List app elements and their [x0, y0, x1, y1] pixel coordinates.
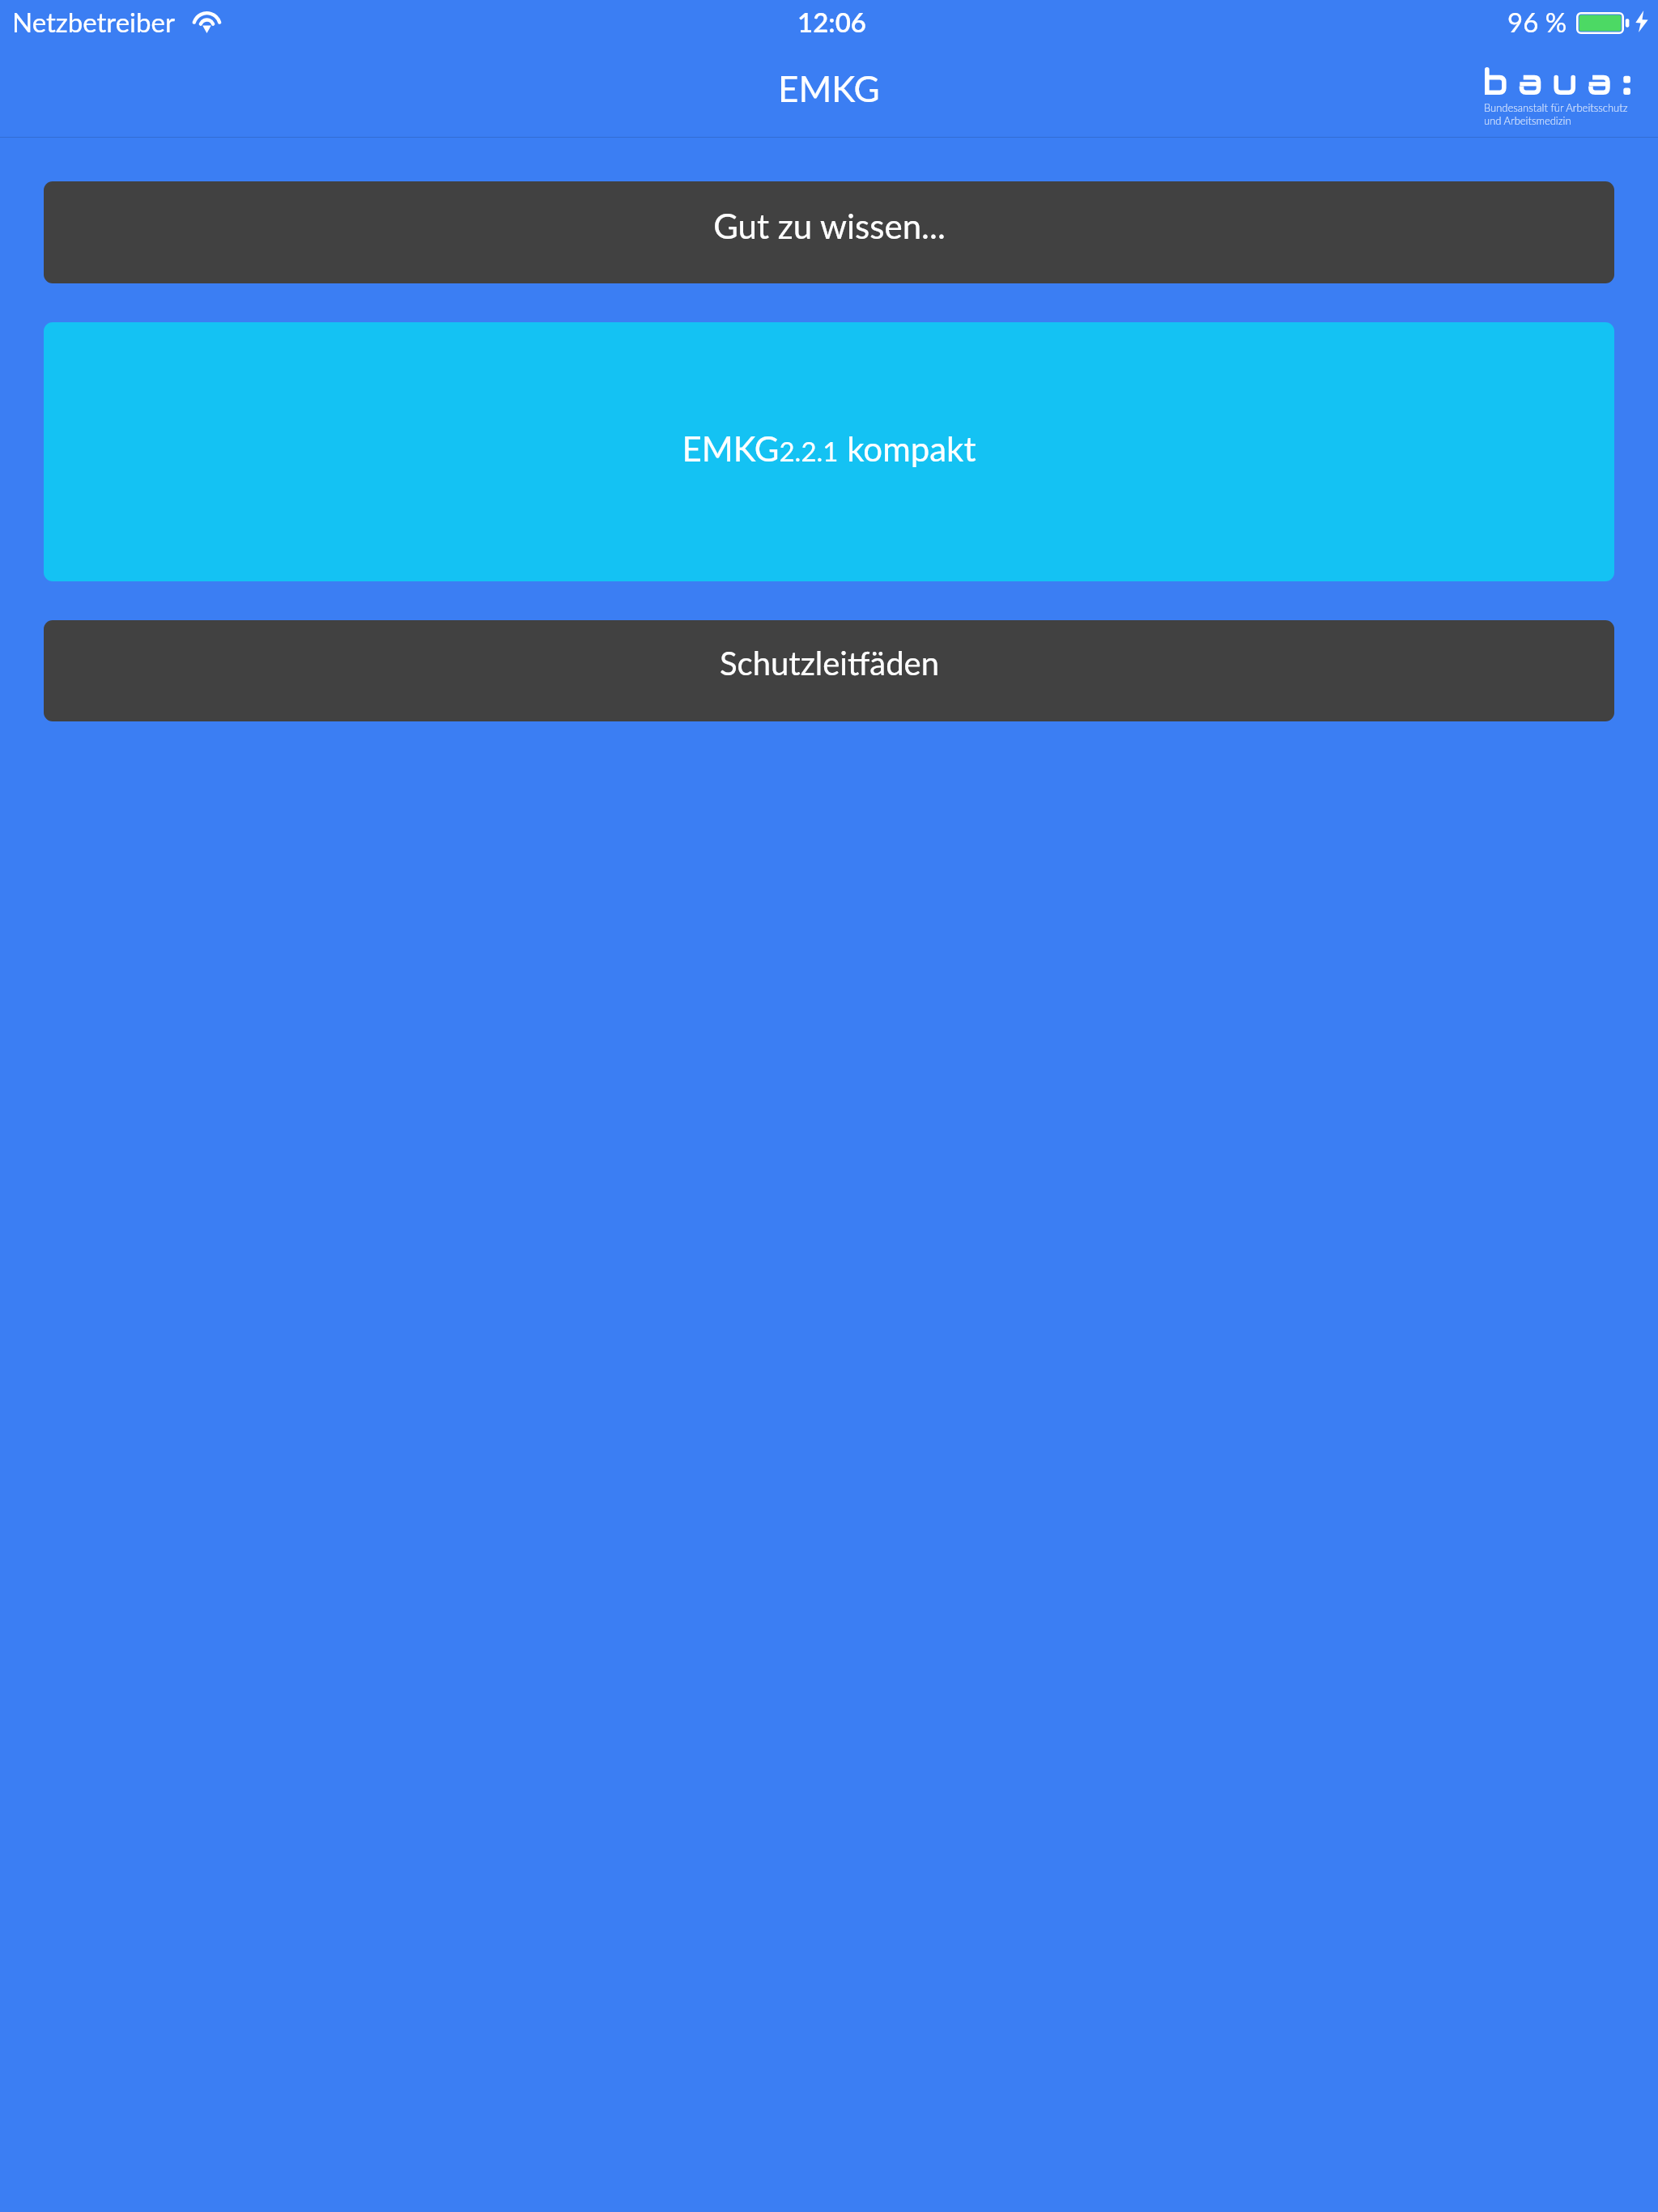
- staticText: EMKG: [778, 67, 880, 110]
- staticText: Bundesanstalt für Arbeitsschutz und Arbe…: [1484, 101, 1628, 127]
- button[interactable]: EMKG2.2.1 kompakt: [44, 322, 1614, 581]
- button[interactable]: Gut zu wissen...: [44, 181, 1614, 283]
- staticText: Netzbetreiber: [12, 6, 175, 38]
- staticText: EMKG2.2.1 kompakt: [682, 428, 976, 469]
- staticText: 12:06: [797, 6, 866, 38]
- staticText: 96 %: [1507, 6, 1567, 38]
- staticText: Schutzleitfäden: [720, 644, 939, 683]
- button[interactable]: Schutzleitfäden: [44, 620, 1614, 721]
- button[interactable]: baua - Bundesanstalt für Arbeitsschutz u…: [1485, 64, 1634, 124]
- staticText: Gut zu wissen...: [713, 206, 946, 246]
